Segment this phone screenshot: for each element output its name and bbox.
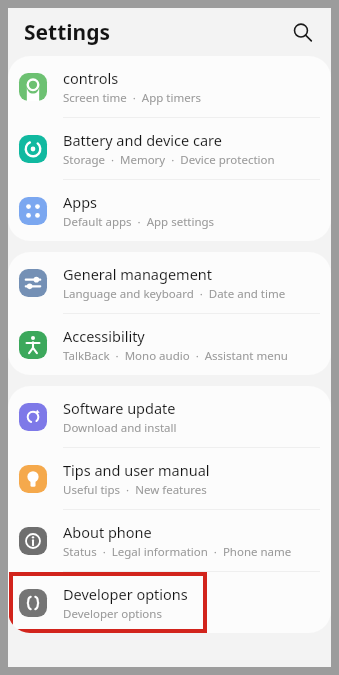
staticText: Battery and device care [63, 130, 222, 150]
staticText: Screen time · App timers [63, 90, 201, 106]
button[interactable]: Developer options [8, 572, 331, 633]
staticText: Useful tips · New features [63, 482, 207, 498]
button[interactable]: Battery and device care [8, 118, 331, 179]
staticText: Storage · Memory · Device protection [63, 152, 275, 168]
staticText: Accessibility [63, 326, 145, 346]
staticText: Apps [63, 192, 98, 212]
staticText: Download and install [63, 420, 177, 436]
button[interactable]: controls [8, 56, 331, 117]
staticText: Language and keyboard · Date and time [63, 286, 286, 302]
button[interactable]: General management [8, 252, 331, 313]
button[interactable]: Software update [8, 386, 331, 447]
button[interactable]: Search [285, 15, 319, 49]
staticText: Developer options [63, 584, 188, 604]
staticText: Settings [24, 18, 111, 47]
staticText: Developer options [63, 606, 162, 622]
button[interactable]: About phone [8, 510, 331, 571]
staticText: Status · Legal information · Phone name [63, 544, 292, 560]
button[interactable]: Accessibility [8, 314, 331, 375]
staticText: Software update [63, 398, 176, 418]
button[interactable]: Apps [8, 180, 331, 241]
staticText: Default apps · App settings [63, 214, 215, 230]
staticText: About phone [63, 522, 152, 542]
button[interactable]: Tips and user manual [8, 448, 331, 509]
staticText: Tips and user manual [63, 460, 210, 480]
staticText: TalkBack · Mono audio · Assistant menu [63, 348, 288, 364]
staticText: General management [63, 264, 213, 284]
staticText: controls [63, 68, 119, 88]
